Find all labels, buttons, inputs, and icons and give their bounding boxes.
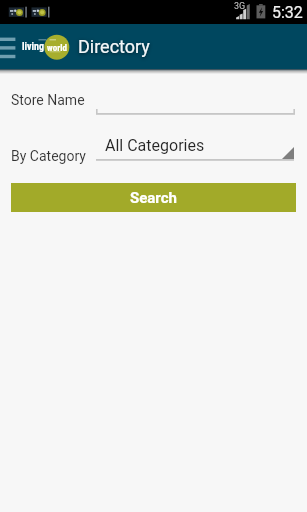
button[interactable]: Search xyxy=(11,183,296,212)
button[interactable]: Category selector xyxy=(96,134,294,161)
staticText: 3G xyxy=(234,1,246,12)
staticText: Directory xyxy=(78,36,150,57)
staticText: world xyxy=(47,43,67,54)
button[interactable]: Store Name input xyxy=(96,96,295,116)
staticText: All Categories xyxy=(105,136,205,155)
staticText: living xyxy=(22,41,45,53)
staticText: 5:32 xyxy=(272,3,303,22)
button[interactable]: Open navigation menu xyxy=(0,24,22,69)
staticText: By Category xyxy=(11,148,86,164)
staticText: Store Name xyxy=(11,92,85,108)
staticText: Search xyxy=(130,189,177,207)
